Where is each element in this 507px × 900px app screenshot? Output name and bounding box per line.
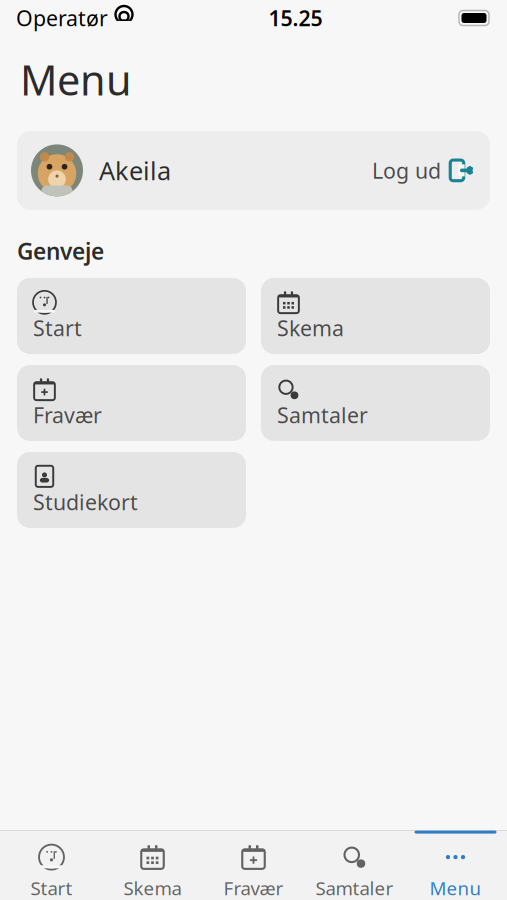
staticText: Skema (277, 314, 344, 342)
button[interactable]: Menu (405, 831, 506, 900)
button[interactable]: Skema (261, 278, 490, 354)
button[interactable]: Start (17, 278, 246, 354)
button[interactable]: Akeila (17, 131, 490, 210)
staticText: Skema (123, 876, 181, 900)
staticText: Menu (20, 52, 132, 107)
staticText: Studiekort (33, 488, 138, 516)
staticText: Samtaler (315, 876, 393, 900)
staticText: Operatør (16, 4, 108, 32)
staticText: Samtaler (277, 401, 368, 429)
button[interactable]: Samtaler (304, 831, 405, 900)
staticText: Start (33, 314, 82, 342)
staticText: Log ud (372, 156, 441, 184)
button[interactable]: Studiekort (17, 452, 246, 528)
staticText: Start (30, 876, 72, 900)
button[interactable]: Skema (102, 831, 203, 900)
button[interactable]: Start (1, 831, 102, 900)
button[interactable]: Samtaler (261, 365, 490, 441)
button[interactable]: Fravær (17, 365, 246, 441)
staticText: Fravær (33, 401, 102, 429)
button[interactable]: Fravær (203, 831, 304, 900)
staticText: Fravær (223, 876, 283, 900)
staticText: Menu (429, 876, 481, 900)
staticText: Akeila (99, 154, 171, 187)
staticText: Genveje (17, 236, 104, 266)
staticText: 15.25 (268, 4, 322, 32)
